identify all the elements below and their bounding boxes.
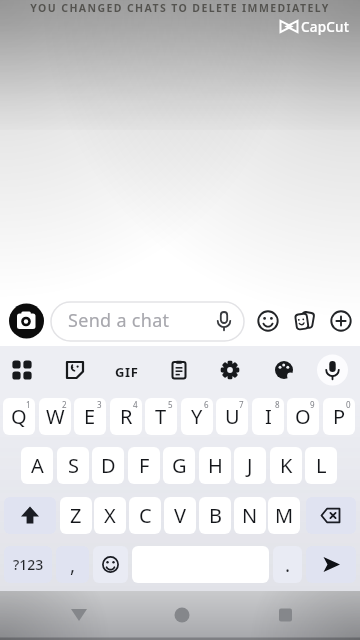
button[interactable]: E [74, 398, 106, 435]
staticText: E [84, 403, 96, 430]
button[interactable]: , [56, 546, 89, 583]
staticText: A [31, 452, 44, 479]
button[interactable]: J [234, 447, 266, 484]
staticText: Q [11, 403, 27, 430]
staticText: C [139, 502, 152, 529]
staticText: 4 [133, 399, 138, 410]
button[interactable] [10, 356, 38, 384]
staticText: T [155, 403, 167, 430]
staticText: 8 [275, 399, 280, 410]
button[interactable]: L [305, 447, 337, 484]
button[interactable] [216, 356, 244, 384]
button[interactable]: GIF [115, 363, 139, 381]
staticText: H [208, 452, 223, 479]
button[interactable]: . [273, 546, 302, 583]
staticText: K [280, 452, 293, 479]
staticText: 6 [204, 399, 209, 410]
button[interactable]: S [57, 447, 89, 484]
button[interactable] [306, 497, 356, 534]
button[interactable] [317, 354, 348, 385]
staticText: G [172, 452, 187, 479]
staticText: . [285, 552, 291, 578]
button[interactable] [306, 546, 356, 583]
staticText: P [333, 403, 346, 430]
button[interactable] [61, 356, 89, 384]
staticText: X [104, 502, 116, 529]
button[interactable] [256, 309, 280, 333]
staticText: 5 [168, 399, 173, 410]
staticText: ?123 [13, 555, 44, 574]
button[interactable]: Y [181, 398, 213, 435]
button[interactable]: W [39, 398, 71, 435]
button[interactable]: Send a chat [51, 302, 244, 341]
button[interactable]: U [216, 398, 248, 435]
staticText: O [295, 403, 311, 430]
button[interactable]: M [268, 497, 300, 534]
staticText: 0 [346, 399, 351, 410]
staticText: W [46, 403, 65, 430]
button[interactable] [113, 356, 141, 384]
button[interactable]: O [287, 398, 319, 435]
staticText: YOU CHANGED CHATS TO DELETE IMMEDIATELY [0, 1, 360, 15]
button[interactable] [329, 309, 353, 333]
button[interactable] [9, 303, 44, 338]
button[interactable]: C [129, 497, 161, 534]
button[interactable]: D [92, 447, 124, 484]
button[interactable]: A [21, 447, 53, 484]
button[interactable] [270, 356, 298, 384]
button[interactable]: P [323, 398, 355, 435]
staticText: 1 [26, 399, 31, 410]
staticText: S [68, 452, 79, 479]
button[interactable]: F [128, 447, 160, 484]
button[interactable] [293, 309, 317, 333]
staticText: J [247, 452, 253, 479]
button[interactable]: B [199, 497, 231, 534]
staticText: D [101, 452, 116, 479]
button[interactable]: H [199, 447, 231, 484]
button[interactable]: N [234, 497, 266, 534]
button[interactable]: Q [3, 398, 35, 435]
staticText: 3 [97, 399, 102, 410]
staticText: 2 [62, 399, 67, 410]
button[interactable]: ?123 [4, 546, 52, 583]
staticText: Send a chat [68, 308, 170, 333]
staticText: B [209, 502, 222, 529]
staticText: Y [191, 403, 203, 430]
staticText: I [265, 403, 272, 430]
staticText: U [225, 403, 240, 430]
staticText: F [139, 452, 150, 479]
staticText: N [242, 502, 258, 529]
button[interactable] [165, 356, 193, 384]
button[interactable]: I [252, 398, 284, 435]
staticText: 9 [310, 399, 315, 410]
staticText: R [120, 403, 133, 430]
staticText: CapCut [301, 18, 350, 36]
button[interactable]: R [110, 398, 142, 435]
staticText: L [316, 452, 327, 479]
staticText: M [275, 502, 294, 529]
button[interactable]: G [163, 447, 195, 484]
button[interactable]: V [164, 497, 196, 534]
button[interactable]: X [94, 497, 126, 534]
staticText: Z [70, 502, 82, 529]
button[interactable]: K [270, 447, 302, 484]
button[interactable]: T [145, 398, 177, 435]
staticText: , [70, 552, 76, 578]
staticText: V [174, 502, 186, 529]
staticText: 7 [239, 399, 244, 410]
button[interactable] [4, 497, 56, 534]
button[interactable] [93, 546, 128, 583]
button[interactable]: Z [60, 497, 92, 534]
